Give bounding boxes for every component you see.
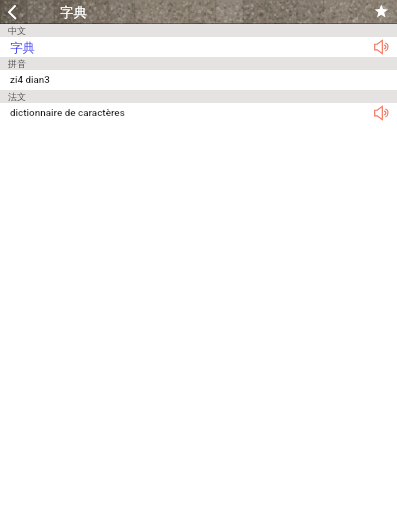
button[interactable]: 字典	[0, 37, 397, 57]
button[interactable]: zi4 dian3	[0, 70, 397, 90]
button[interactable]: dictionnaire de caractères	[0, 103, 397, 123]
button[interactable]: Play audio	[369, 37, 393, 57]
staticText: 字典	[60, 4, 87, 21]
staticText: 法文	[8, 91, 26, 102]
staticText: zi4 dian3	[10, 74, 50, 85]
staticText: 字典	[10, 40, 35, 56]
button[interactable]: Play audio	[369, 103, 393, 123]
staticText: 中文	[8, 25, 26, 36]
button[interactable]: Back	[0, 0, 30, 24]
button[interactable]: Favorite	[369, 0, 397, 24]
staticText: dictionnaire de caractères	[10, 107, 125, 119]
staticText: 拼音	[8, 58, 26, 69]
